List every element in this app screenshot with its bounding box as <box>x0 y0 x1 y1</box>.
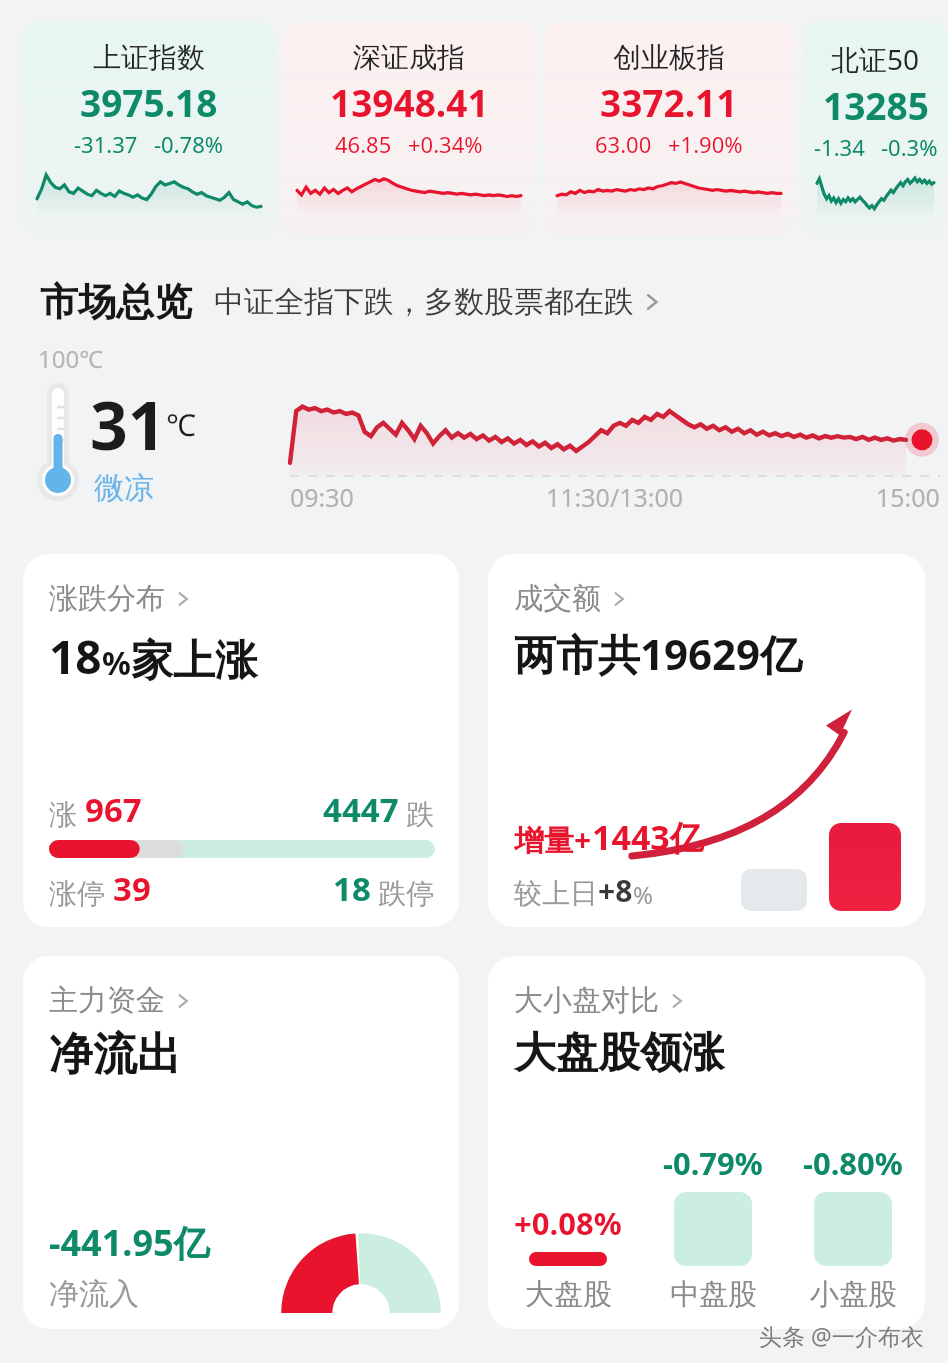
staticText: 较上日 <box>514 876 598 911</box>
staticText: 涨停 <box>49 873 113 911</box>
button[interactable]: 主力资金 <box>23 956 459 1329</box>
staticText: -0.78% <box>154 129 224 159</box>
staticText: 13948.41 <box>330 77 489 127</box>
button[interactable]: 创业板指 <box>543 22 795 236</box>
staticText: 深证成指 <box>353 40 465 75</box>
staticText: 大盘股 <box>525 1276 612 1313</box>
staticText: 15:00 <box>876 480 940 514</box>
button[interactable]: 深证成指 <box>283 22 535 236</box>
staticText: +8 <box>598 870 633 911</box>
staticText: 中盘股 <box>670 1276 757 1313</box>
staticText: % <box>102 641 131 685</box>
staticText: 两市共19629亿 <box>514 625 803 682</box>
staticText: 31 <box>90 379 166 469</box>
staticText: 上证指数 <box>93 40 205 75</box>
staticText: 净流入 <box>49 1275 139 1313</box>
staticText: +1.90% <box>668 129 743 159</box>
staticText: 18 <box>49 625 102 688</box>
staticText: -0.3% <box>881 132 938 162</box>
staticText: 4447 <box>323 787 399 832</box>
button[interactable]: 大小盘对比 <box>488 956 925 1329</box>
staticText: 39 <box>113 866 151 911</box>
staticText: -0.80% <box>803 1142 903 1184</box>
staticText: 中证全指下跌，多数股票都在跌 <box>214 283 634 321</box>
staticText: 46.85 <box>335 129 392 159</box>
button[interactable]: 北证50 <box>803 22 948 236</box>
staticText: 跌停 <box>371 873 435 911</box>
staticText: 主力资金 <box>49 982 165 1019</box>
button[interactable]: 上证指数 <box>23 22 275 236</box>
staticText: 13285 <box>823 80 929 130</box>
staticText: 增量+ <box>514 819 592 860</box>
staticText: 1443亿 <box>592 814 704 860</box>
staticText: 63.00 <box>595 129 652 159</box>
staticText: 北证50 <box>831 40 920 78</box>
staticText: 微凉 <box>94 469 154 507</box>
staticText: ℃ <box>166 404 196 445</box>
staticText: 3975.18 <box>80 77 218 127</box>
staticText: 跌 <box>399 794 435 832</box>
staticText: -31.37 <box>74 129 138 159</box>
staticText: 头条 @一介布衣 <box>759 1320 924 1351</box>
staticText: 09:30 <box>290 480 354 514</box>
staticText: 11:30/13:00 <box>546 480 684 514</box>
staticText: +0.34% <box>408 129 483 159</box>
staticText: 小盘股 <box>810 1276 897 1313</box>
staticText: 家上涨 <box>131 635 257 688</box>
staticText: 967 <box>85 787 142 832</box>
staticText: 涨 <box>49 794 85 832</box>
staticText: -441.95亿 <box>49 1218 210 1267</box>
button[interactable]: 市场总览 <box>40 278 948 326</box>
staticText: 100℃ <box>38 342 104 375</box>
staticText: +0.08% <box>514 1202 622 1244</box>
staticText: 大小盘对比 <box>514 982 659 1019</box>
staticText: 涨跌分布 <box>49 580 165 617</box>
staticText: 创业板指 <box>613 40 725 75</box>
staticText: 市场总览 <box>40 278 192 326</box>
button[interactable]: 成交额 <box>488 554 925 927</box>
staticText: 成交额 <box>514 580 601 617</box>
staticText: 3372.11 <box>600 77 738 127</box>
staticText: % <box>633 878 653 911</box>
staticText: 净流出 <box>49 1027 181 1082</box>
staticText: 大盘股领涨 <box>514 1027 724 1080</box>
staticText: -1.34 <box>814 132 865 162</box>
staticText: 18 <box>333 866 371 911</box>
staticText: -0.79% <box>663 1142 763 1184</box>
button[interactable]: 涨跌分布 <box>23 554 459 927</box>
